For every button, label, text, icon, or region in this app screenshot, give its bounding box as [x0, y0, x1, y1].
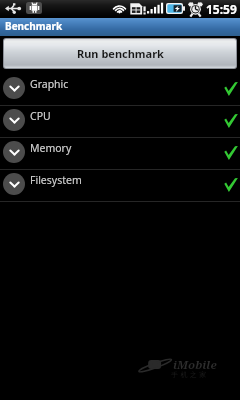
staticText: iMobile	[173, 357, 217, 373]
button[interactable]: Expand Filesystem	[0, 170, 240, 201]
button[interactable]: Expand CPU	[0, 106, 240, 137]
staticText: 15:59	[206, 1, 237, 17]
button[interactable]: Run benchmark	[4, 39, 236, 68]
staticText: Run benchmark	[77, 46, 164, 61]
other: Expand Memory	[3, 141, 25, 163]
staticText: CPU	[30, 109, 51, 123]
other: Expand CPU	[3, 109, 25, 131]
staticText: Filesystem	[30, 173, 82, 187]
button[interactable]: Expand Memory	[0, 138, 240, 169]
other: Expand Graphic	[3, 77, 25, 99]
other: Expand Filesystem	[3, 173, 25, 195]
staticText: 手机之家	[171, 370, 209, 379]
staticText: Graphic	[30, 77, 69, 91]
staticText: Memory	[30, 141, 72, 155]
staticText: Benchmark	[5, 19, 63, 33]
button[interactable]: Expand Graphic	[0, 74, 240, 105]
